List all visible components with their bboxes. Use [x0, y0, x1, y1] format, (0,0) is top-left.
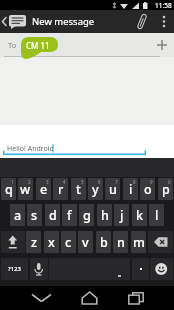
button[interactable]	[132, 258, 149, 280]
button[interactable]	[148, 231, 173, 253]
staticText: 5	[81, 179, 84, 185]
staticText: g	[83, 207, 91, 224]
staticText: 1	[11, 179, 14, 185]
staticText: 6	[98, 179, 101, 185]
button[interactable]	[77, 286, 101, 310]
button[interactable]	[150, 258, 173, 280]
button[interactable]: c	[61, 231, 76, 253]
button[interactable]	[30, 258, 48, 280]
button[interactable]	[124, 286, 148, 310]
staticText: 7	[115, 179, 118, 185]
button[interactable]	[156, 10, 174, 33]
button[interactable]: w	[18, 178, 33, 200]
staticText: f	[67, 207, 72, 224]
button[interactable]: v	[78, 231, 93, 253]
button[interactable]: y	[88, 178, 103, 200]
button[interactable]: d	[45, 204, 60, 226]
staticText: u	[109, 181, 117, 198]
staticText: t	[76, 181, 81, 198]
button[interactable]	[29, 286, 53, 310]
staticText: s	[31, 207, 38, 224]
button[interactable]: b	[96, 231, 111, 253]
button[interactable]: g	[79, 204, 94, 226]
staticText: q	[5, 181, 13, 198]
staticText: r	[58, 181, 64, 198]
button[interactable]	[1, 231, 25, 253]
staticText: v	[82, 234, 89, 251]
button[interactable]: t	[71, 178, 86, 200]
staticText: y	[92, 181, 99, 198]
staticText: n	[117, 234, 125, 251]
button[interactable]: k	[132, 204, 147, 226]
staticText: New message	[32, 15, 95, 28]
button[interactable]: s	[27, 204, 42, 226]
button[interactable]: n	[113, 231, 128, 253]
button[interactable]: h	[97, 204, 112, 226]
staticText: j	[120, 207, 124, 224]
button[interactable]: l	[149, 204, 164, 226]
staticText: m	[133, 234, 145, 251]
button[interactable]: u	[105, 178, 120, 200]
staticText: z	[31, 234, 37, 251]
button[interactable]: r	[53, 178, 68, 200]
staticText: h	[101, 207, 109, 224]
staticText: o	[144, 181, 152, 198]
staticText: Hello! Android	[7, 144, 54, 154]
staticText: c	[65, 234, 72, 251]
button[interactable]: i	[123, 178, 138, 200]
staticText: i	[129, 181, 133, 198]
staticText: 8	[133, 179, 136, 185]
staticText: 3	[46, 179, 49, 185]
staticText: 2	[28, 179, 31, 185]
staticText: e	[40, 181, 48, 198]
staticText: b	[100, 234, 108, 251]
button[interactable]	[152, 33, 174, 57]
staticText: d	[49, 207, 57, 224]
button[interactable]: z	[26, 231, 41, 253]
button[interactable]: o	[140, 178, 155, 200]
staticText: CM 11	[26, 40, 50, 51]
button[interactable]: CM 11	[21, 37, 58, 60]
staticText: k	[136, 207, 143, 224]
staticText: 0	[168, 179, 171, 185]
staticText: ?123	[8, 265, 21, 273]
staticText: l	[155, 207, 159, 224]
button[interactable]: m	[131, 231, 146, 253]
button[interactable]: p	[158, 178, 173, 200]
button[interactable]: Hello! Android	[0, 125, 174, 158]
staticText: a	[14, 207, 22, 224]
staticText: 11:58	[155, 1, 172, 10]
button[interactable]: x	[44, 231, 59, 253]
staticText: To	[8, 40, 17, 50]
button[interactable]: q	[1, 178, 16, 200]
staticText: 4	[63, 179, 66, 185]
button[interactable]	[49, 258, 130, 280]
button[interactable]: f	[62, 204, 77, 226]
button[interactable]: New message	[0, 10, 174, 33]
button[interactable]: ?123	[1, 258, 28, 280]
button[interactable]	[130, 10, 156, 33]
button[interactable]: e	[36, 178, 51, 200]
staticText: x	[48, 234, 55, 251]
staticText: 9	[150, 179, 153, 185]
button[interactable]: j	[114, 204, 129, 226]
staticText: w	[20, 181, 31, 198]
button[interactable]: a	[10, 204, 25, 226]
staticText: p	[162, 181, 170, 198]
